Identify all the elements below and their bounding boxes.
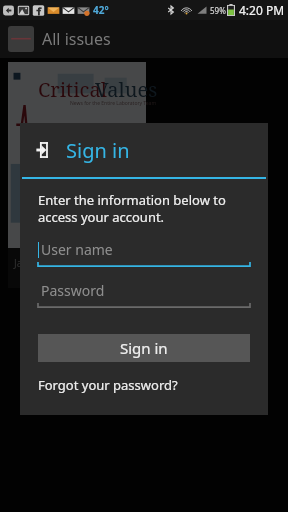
staticText: News for the Entire Laboratory Team — [70, 100, 157, 107]
button[interactable]: Sign in — [38, 334, 250, 362]
staticText: Values — [95, 76, 158, 103]
button[interactable]: User name — [38, 240, 250, 267]
staticText: January 2014 — [14, 256, 76, 270]
staticText: 42° — [93, 3, 109, 17]
staticText: 59% — [210, 5, 226, 16]
staticText: 4:20 PM — [239, 2, 285, 18]
other: Sign in — [36, 141, 54, 159]
button[interactable]: Forgot your password? — [38, 376, 250, 394]
staticText: Enter the information below to access yo… — [38, 191, 250, 226]
staticText: Sign in — [120, 338, 168, 358]
staticText: All issues — [42, 28, 111, 50]
staticText: Critical — [38, 76, 107, 103]
staticText: Password — [41, 281, 105, 300]
button[interactable]: All issues — [0, 20, 288, 58]
staticText: User name — [41, 240, 113, 259]
staticText: Forgot your password? — [38, 376, 178, 394]
staticText: Sign in — [66, 137, 130, 164]
button[interactable]: Password — [38, 281, 250, 308]
